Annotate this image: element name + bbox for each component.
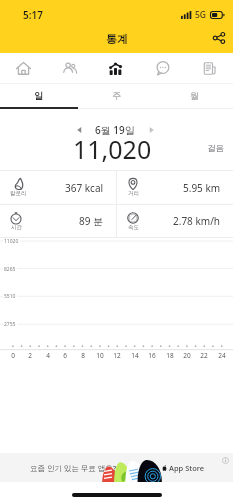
staticText: 2: [28, 351, 32, 360]
staticText: 주: [112, 90, 121, 101]
staticText: 5G: [195, 9, 207, 21]
staticText: 6월 19일: [95, 123, 135, 137]
button[interactable]: Previous day: [70, 121, 88, 139]
staticText: 5:17: [23, 8, 43, 22]
button[interactable]: 거리: [117, 171, 233, 204]
staticText: 걸음: [207, 143, 224, 154]
button[interactable]: Friends: [46, 53, 92, 83]
button[interactable]: 속도: [117, 205, 233, 237]
staticText: 칼로리: [10, 190, 27, 197]
button[interactable]: Share: [208, 27, 230, 49]
staticText: 10: [96, 351, 104, 360]
button[interactable]: 요즘 인기 있는 무료 앱은?: [0, 453, 233, 482]
staticText: 8: [81, 351, 85, 360]
button[interactable]: Ad info: [220, 455, 230, 465]
staticText: 89 분: [79, 214, 104, 228]
staticText: 5.95 km: [183, 181, 221, 195]
staticText: 16: [148, 351, 156, 360]
staticText: 거리: [128, 190, 139, 197]
staticText: 18: [166, 351, 174, 360]
staticText: 367 kcal: [65, 181, 104, 195]
staticText: 5510: [4, 293, 16, 300]
staticText: 2755: [4, 321, 16, 328]
staticText: 20: [183, 351, 191, 360]
button[interactable]: Home: [0, 53, 46, 83]
staticText: 통계: [106, 32, 128, 46]
staticText: 일: [34, 90, 43, 101]
button[interactable]: Chat: [139, 53, 186, 83]
button[interactable]: Next day: [142, 121, 160, 139]
staticText: 11020: [4, 238, 19, 245]
staticText: 14: [131, 351, 139, 360]
button[interactable]: Statistics: [92, 53, 139, 83]
staticText: 6: [63, 351, 67, 360]
staticText: 24: [218, 351, 226, 360]
button[interactable]: News: [186, 53, 233, 83]
staticText: App Store: [169, 463, 205, 473]
staticText: 11,020: [73, 132, 152, 166]
staticText: 12: [113, 351, 121, 360]
button[interactable]: 시간: [0, 205, 116, 237]
button[interactable]: 월: [155, 84, 233, 107]
staticText: 22: [200, 351, 208, 360]
staticText: 시간: [11, 224, 22, 231]
button[interactable]: 주: [77, 84, 155, 107]
staticText: 4: [46, 351, 50, 360]
staticText: 8265: [4, 266, 16, 273]
staticText: 속도: [128, 224, 139, 231]
staticText: 2.78 km/h: [173, 214, 221, 228]
staticText: 요즘 인기 있는 무료 앱은?: [30, 463, 117, 473]
staticText: 0: [11, 351, 15, 360]
staticText: 월: [190, 90, 199, 101]
button[interactable]: 일: [0, 84, 77, 107]
button[interactable]: 칼로리: [0, 171, 116, 204]
